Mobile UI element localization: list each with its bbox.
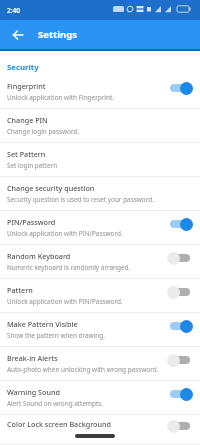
staticText: Settings [38, 28, 77, 41]
staticText: Show the pattern when drawing. [7, 331, 105, 340]
staticText: Change PIN [7, 115, 48, 125]
button[interactable]: Warning Sound [0, 381, 200, 415]
staticText: Warning Sound [7, 387, 60, 397]
staticText: Security [7, 62, 39, 73]
staticText: Break-in Alerts [7, 353, 58, 363]
staticText: Make Pattern Visible [7, 319, 78, 329]
staticText: Unlock application with PIN/Password. [7, 297, 123, 306]
button[interactable]: Break-in Alerts [0, 347, 200, 381]
staticText: Numeric keyboard is randomly arranged. [7, 263, 131, 272]
staticText: Change login password. [7, 127, 80, 136]
staticText: Auto-photo when unlocking with wrong pas… [7, 365, 159, 374]
staticText: Fingerprint [7, 81, 46, 91]
staticText: Alert Sound on wrong attempts. [7, 399, 104, 408]
staticText: Set Pattern [7, 149, 46, 159]
staticText: PIN/Password [7, 217, 56, 227]
staticText: 2:40 [7, 6, 20, 15]
staticText: Unlock application with Fingerprint. [7, 93, 114, 102]
button[interactable]: Change PIN [0, 109, 200, 143]
staticText: Set login pattern [7, 161, 58, 170]
button[interactable]: Fingerprint [0, 75, 200, 109]
button[interactable]: Make Pattern Visible [0, 313, 200, 347]
button[interactable]: Change security question [0, 177, 200, 211]
button[interactable]: Pattern [0, 279, 200, 313]
staticText: Unlock application with PIN/Password. [7, 229, 123, 238]
button[interactable]: Random Keyboard [0, 245, 200, 279]
staticText: Color Lock screen Background [7, 419, 111, 429]
button[interactable]: Set Pattern [0, 143, 200, 177]
button[interactable] [10, 27, 26, 43]
button[interactable]: Color Lock screen Background [0, 415, 200, 445]
staticText: Security question is used to reset your … [7, 195, 154, 204]
staticText: Random Keyboard [7, 251, 71, 261]
staticText: Change security question [7, 183, 95, 193]
staticText: Pattern [7, 285, 33, 295]
button[interactable]: PIN/Password [0, 211, 200, 245]
